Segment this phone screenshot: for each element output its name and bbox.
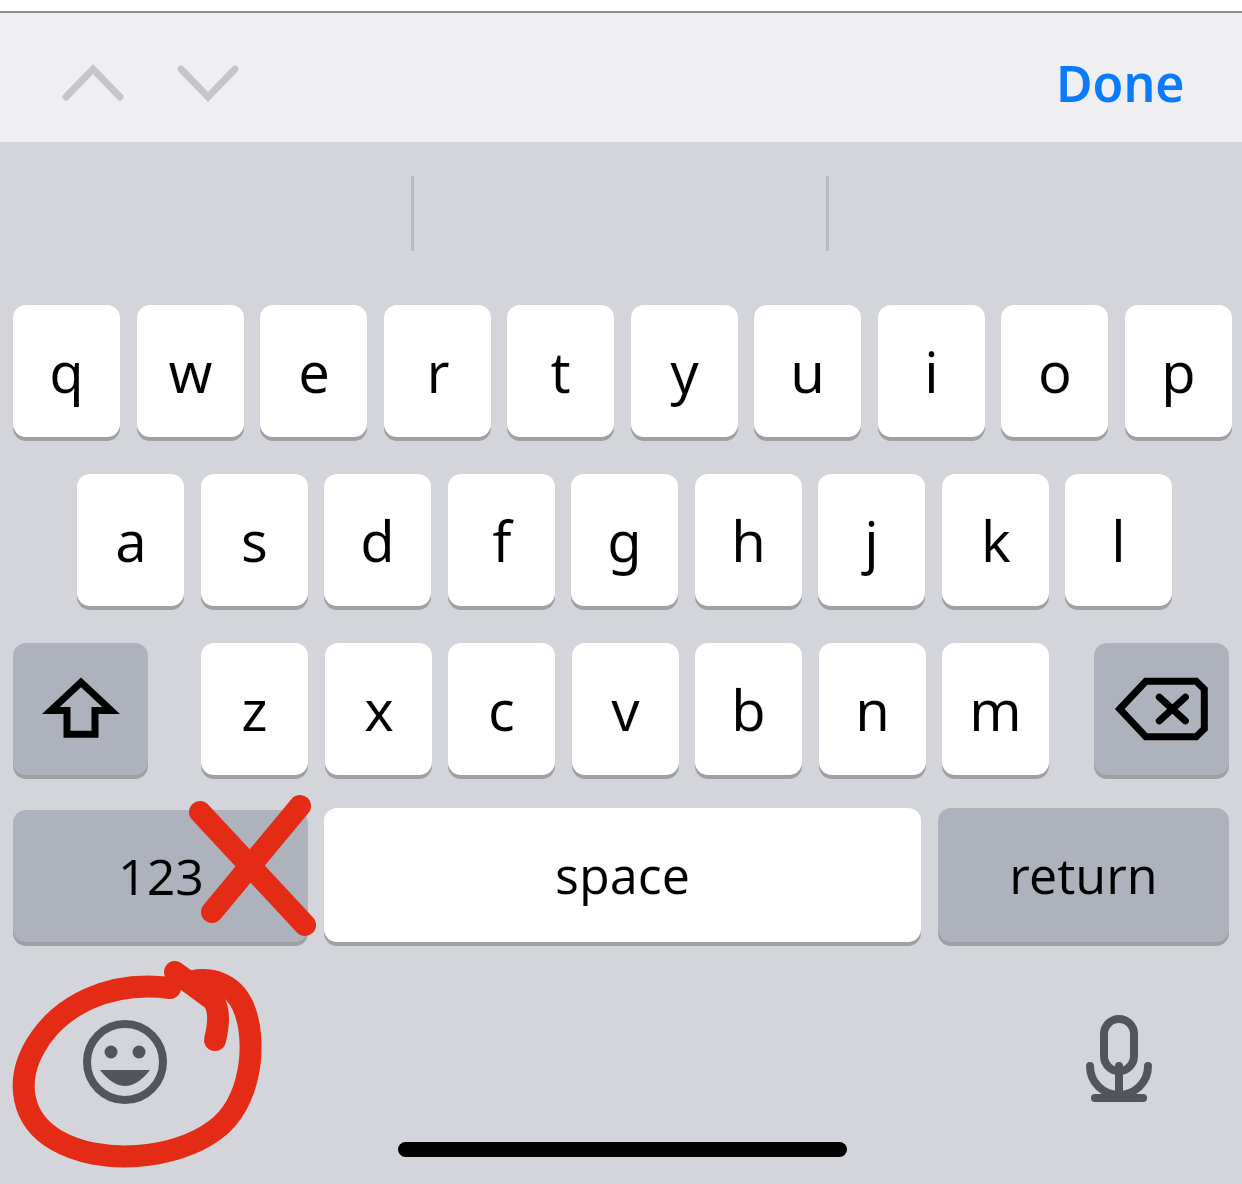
staticText: n	[855, 671, 890, 747]
staticText: return	[1009, 841, 1158, 909]
staticText: c	[488, 671, 515, 747]
button[interactable]: a	[77, 474, 184, 606]
button[interactable]: return	[938, 808, 1229, 942]
button[interactable]: j	[818, 474, 925, 606]
staticText: g	[607, 502, 642, 578]
staticText: Done	[1056, 49, 1185, 117]
staticText: l	[1111, 502, 1126, 578]
staticText: y	[670, 333, 699, 409]
button[interactable]: g	[571, 474, 678, 606]
staticText: h	[731, 502, 766, 578]
button[interactable]: z	[201, 643, 308, 775]
button[interactable]: l	[1065, 474, 1172, 606]
button[interactable]: x	[325, 643, 432, 775]
staticText: w	[168, 333, 213, 409]
staticText: t	[550, 333, 571, 409]
staticText: v	[611, 671, 640, 747]
button[interactable]: m	[942, 643, 1049, 775]
button[interactable]: h	[695, 474, 802, 606]
staticText: j	[864, 502, 879, 578]
staticText: u	[790, 333, 825, 409]
staticText: m	[969, 671, 1022, 747]
staticText: a	[115, 502, 147, 578]
staticText: b	[731, 671, 766, 747]
staticText: q	[49, 333, 84, 409]
button[interactable]: v	[572, 643, 679, 775]
button[interactable]: r	[384, 305, 491, 437]
button[interactable]: Next field	[163, 38, 253, 128]
button[interactable]: y	[631, 305, 738, 437]
staticText: space	[555, 841, 690, 909]
staticText: r	[426, 333, 450, 409]
button[interactable]: p	[1125, 305, 1232, 437]
staticText: k	[981, 502, 1011, 578]
button[interactable]: o	[1001, 305, 1108, 437]
button[interactable]: k	[942, 474, 1049, 606]
staticText: d	[360, 502, 395, 578]
button[interactable]: s	[201, 474, 308, 606]
staticText: o	[1038, 333, 1072, 409]
button[interactable]: Previous field	[48, 38, 138, 128]
staticText: i	[924, 333, 939, 409]
staticText: p	[1161, 333, 1196, 409]
button[interactable]: 123	[13, 810, 308, 942]
button[interactable]: t	[507, 305, 614, 437]
button[interactable]: f	[448, 474, 555, 606]
button[interactable]: Emoji	[65, 1002, 185, 1122]
staticText: s	[241, 502, 268, 578]
button[interactable]: u	[754, 305, 861, 437]
button[interactable]: d	[324, 474, 431, 606]
button[interactable]: Shift	[13, 643, 148, 775]
staticText: 123	[118, 842, 204, 910]
button[interactable]: q	[13, 305, 120, 437]
button[interactable]: n	[819, 643, 926, 775]
staticText: z	[241, 671, 268, 747]
button[interactable]: c	[448, 643, 555, 775]
button[interactable]: w	[137, 305, 244, 437]
staticText: e	[298, 333, 330, 409]
button[interactable]: i	[878, 305, 985, 437]
button[interactable]: Backspace	[1094, 643, 1229, 775]
button[interactable]: Dictate	[1059, 1002, 1179, 1122]
button[interactable]: space	[324, 808, 921, 942]
button[interactable]: e	[260, 305, 367, 437]
button[interactable]: b	[695, 643, 802, 775]
staticText: f	[492, 502, 512, 578]
button[interactable]: Done	[1040, 38, 1200, 128]
staticText: x	[364, 671, 394, 747]
